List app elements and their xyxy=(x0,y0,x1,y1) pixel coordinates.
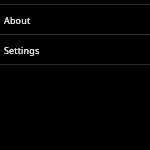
staticText: About xyxy=(4,14,31,26)
button[interactable]: Settings xyxy=(0,35,150,64)
button[interactable]: About xyxy=(0,5,150,34)
staticText: Settings xyxy=(4,44,40,56)
